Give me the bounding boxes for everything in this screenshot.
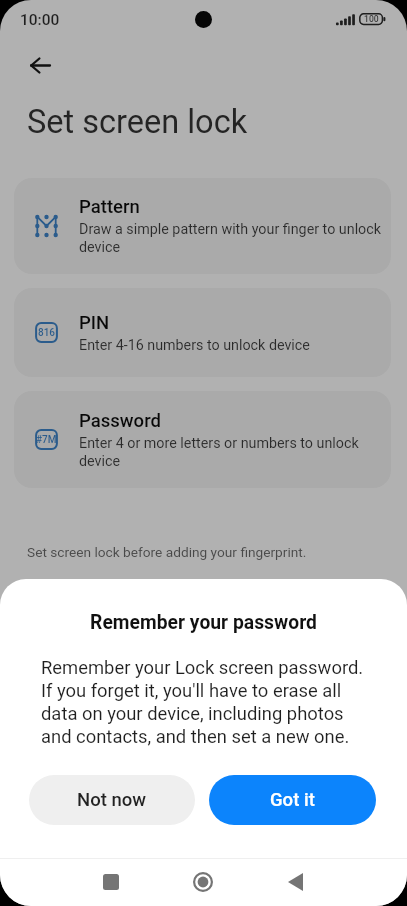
staticText: Remember your password xyxy=(0,611,407,634)
button[interactable]: #7M xyxy=(14,391,391,488)
button[interactable]: Back xyxy=(19,44,61,86)
staticText: 816 xyxy=(38,327,56,339)
button[interactable]: Pattern xyxy=(14,178,391,274)
button[interactable]: Recent apps xyxy=(88,859,133,904)
button[interactable]: Home xyxy=(180,859,225,904)
staticText: Enter 4 or more letters or numbers to un… xyxy=(79,435,387,470)
staticText: 10:00 xyxy=(20,11,60,29)
staticText: PIN xyxy=(79,312,110,334)
button[interactable]: 816 xyxy=(14,288,391,377)
staticText: 100 xyxy=(364,14,379,24)
button[interactable]: Not now xyxy=(29,775,195,825)
staticText: Enter 4-16 numbers to unlock device xyxy=(79,337,310,354)
button[interactable]: Back xyxy=(273,859,318,904)
button[interactable]: Got it xyxy=(209,775,376,825)
staticText: Remember your Lock screen password. If y… xyxy=(41,657,374,747)
staticText: Got it xyxy=(270,789,315,811)
staticText: Pattern xyxy=(79,196,140,218)
staticText: #7M xyxy=(36,434,57,446)
staticText: Draw a simple pattern with your finger t… xyxy=(79,221,387,256)
staticText: Set screen lock before adding your finge… xyxy=(27,544,307,560)
staticText: Password xyxy=(79,410,161,432)
staticText: Set screen lock xyxy=(27,103,248,141)
staticText: Not now xyxy=(77,789,147,811)
